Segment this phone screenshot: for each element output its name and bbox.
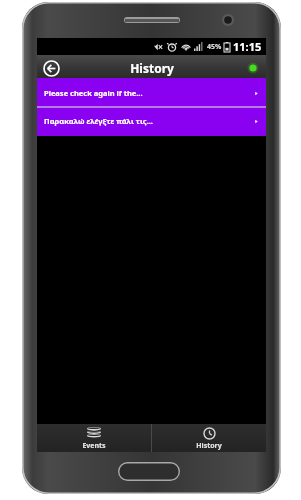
staticText: 11:15 (233, 39, 262, 54)
staticText: Please check again if the... (44, 88, 254, 98)
other: Connected (247, 62, 259, 74)
button[interactable]: History (152, 424, 266, 452)
staticText: History (130, 60, 174, 76)
staticText: 45% (207, 42, 222, 52)
staticText: Παρακαλώ ελέγξτε πάλι τις... (44, 116, 254, 126)
button[interactable]: Events (37, 424, 151, 452)
staticText: Events (82, 441, 106, 451)
button[interactable]: Please check again if the... (37, 80, 266, 106)
staticText: History (196, 441, 222, 451)
button[interactable]: Παρακαλώ ελέγξτε πάλι τις... (37, 108, 266, 134)
button[interactable]: Back (41, 58, 61, 78)
